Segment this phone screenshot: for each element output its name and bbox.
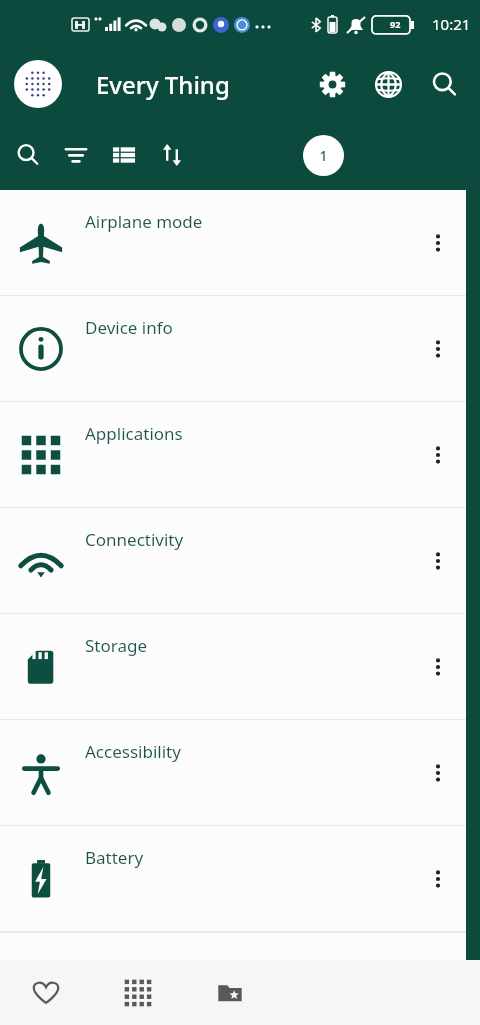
button[interactable]: Device info xyxy=(0,296,466,401)
button[interactable]: Airplane mode xyxy=(0,190,466,295)
button[interactable]: Sort xyxy=(148,131,196,179)
staticText: Connectivity xyxy=(85,528,184,551)
button[interactable]: Connectivity xyxy=(0,508,466,613)
button[interactable]: Accessibility xyxy=(0,720,466,825)
button[interactable]: Search xyxy=(4,131,52,179)
button[interactable]: More options for Accessibility xyxy=(416,751,460,795)
staticText: Every Thing xyxy=(96,68,230,101)
button[interactable]: Filter xyxy=(52,131,100,179)
button[interactable]: More options for Battery xyxy=(416,857,460,901)
staticText: 10:21 xyxy=(432,14,471,34)
button[interactable]: More options for Connectivity xyxy=(416,539,460,583)
staticText: Airplane mode xyxy=(85,210,203,233)
button[interactable]: Favorites xyxy=(22,969,70,1017)
staticText: 1 xyxy=(319,146,328,165)
button[interactable]: More options for Airplane mode xyxy=(416,221,460,265)
button[interactable]: Applications xyxy=(0,402,466,507)
button[interactable]: Search xyxy=(416,56,472,112)
button[interactable]: Storage xyxy=(0,614,466,719)
button[interactable]: Settings xyxy=(304,56,360,112)
staticText: Battery xyxy=(85,846,144,869)
button[interactable]: Language xyxy=(360,56,416,112)
staticText: Storage xyxy=(85,634,148,657)
button[interactable]: List view xyxy=(100,131,148,179)
button[interactable]: More options for Storage xyxy=(416,645,460,689)
staticText: Accessibility xyxy=(85,740,181,763)
button[interactable]: More options for Applications xyxy=(416,433,460,477)
button[interactable]: Profile xyxy=(14,60,62,108)
button[interactable]: 1 xyxy=(303,135,344,176)
button[interactable]: Battery xyxy=(0,826,466,931)
button[interactable]: Collections xyxy=(206,969,254,1017)
staticText: Device info xyxy=(85,316,173,339)
button[interactable]: More options for Device info xyxy=(416,327,460,371)
staticText: Applications xyxy=(85,422,183,445)
staticText: 92 xyxy=(390,18,401,30)
button[interactable]: All apps xyxy=(114,969,162,1017)
